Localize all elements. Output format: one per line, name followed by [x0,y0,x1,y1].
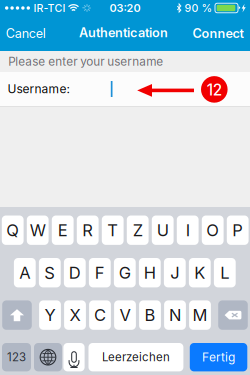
button[interactable]: T [102,215,124,245]
button[interactable]: Username: [0,72,250,106]
staticText: C [94,305,106,325]
button[interactable]: Dictate [63,343,85,371]
staticText: 123 [7,350,26,364]
button[interactable]: W [27,215,49,245]
staticText: 90 % [184,1,212,14]
staticText: Z [133,220,143,240]
staticText: G [119,263,131,283]
staticText: W [30,220,46,240]
button[interactable]: K [189,258,211,287]
staticText: U [157,220,169,240]
button[interactable]: V [114,300,136,330]
button[interactable]: Switch keyboard [34,343,62,371]
staticText: S [44,263,55,283]
button[interactable]: Z [127,215,149,245]
button[interactable]: E [52,215,74,245]
button[interactable]: H [139,258,161,287]
staticText: A [19,263,30,283]
staticText: H [144,263,156,283]
staticText: F [95,263,105,283]
staticText: Leerzeichen [102,350,170,364]
staticText: Authentication [79,25,168,40]
staticText: 03:20 [109,1,140,15]
staticText: D [69,263,81,283]
button[interactable]: J [164,258,186,287]
button[interactable]: S [39,258,61,287]
button[interactable]: L [214,258,236,287]
staticText: R [82,220,93,240]
button[interactable]: Shift [2,300,32,330]
button[interactable]: R [77,215,99,245]
staticText: Q [6,220,19,240]
staticText: T [107,220,118,240]
staticText: 12 [207,80,222,99]
button[interactable]: O [202,215,224,245]
button[interactable]: Connect [187,19,250,48]
staticText: X [69,305,80,325]
button[interactable]: Y [39,300,61,330]
button[interactable]: N [164,300,186,330]
button[interactable]: Cancel [0,19,52,48]
button[interactable]: X [64,300,86,330]
button[interactable]: Leerzeichen [88,343,183,371]
button[interactable]: A [14,258,36,287]
button[interactable]: I [177,215,199,245]
button[interactable]: C [89,300,111,330]
staticText: K [194,263,205,283]
staticText: Cancel [6,26,46,41]
staticText: Connect [193,26,244,41]
staticText: J [170,263,179,283]
button[interactable]: Fertig [190,343,247,371]
button[interactable]: D [64,258,86,287]
button[interactable]: Q [2,215,24,245]
staticText: O [206,220,219,240]
staticText: E [58,220,68,240]
staticText: IR-TCI [33,1,65,14]
button[interactable]: M [189,300,211,330]
staticText: B [144,305,155,325]
staticText: V [119,305,130,325]
staticText: Username: [7,82,69,96]
staticText: I [186,220,190,240]
staticText: N [169,305,181,325]
button[interactable]: B [139,300,161,330]
staticText: L [220,263,229,283]
staticText: Please enter your username [8,54,163,69]
button[interactable]: 123 [2,343,31,371]
button[interactable]: F [89,258,111,287]
staticText: P [232,220,243,240]
button[interactable]: Delete [218,300,248,330]
staticText: Fertig [202,350,235,364]
button[interactable]: G [114,258,136,287]
staticText: Y [44,305,55,325]
staticText: M [192,305,207,325]
button[interactable]: U [152,215,174,245]
button[interactable]: P [227,215,249,245]
